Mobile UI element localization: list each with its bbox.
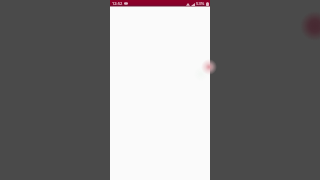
other: Wi-Fi: [186, 3, 190, 6]
other: Notifications: [124, 2, 128, 5]
staticText: 12:52: [112, 1, 123, 6]
other: Mobile signal: [191, 3, 195, 6]
other: Battery: [206, 2, 209, 6]
staticText: 53%: [196, 1, 205, 7]
